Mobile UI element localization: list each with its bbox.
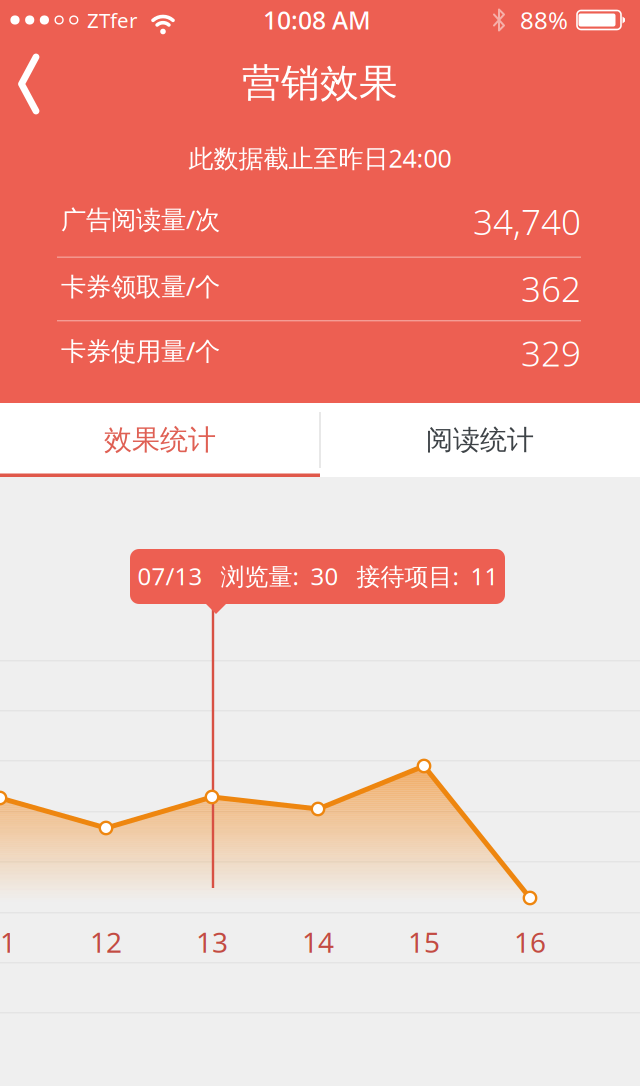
button[interactable]: 效果统计	[0, 403, 320, 477]
staticText: 11	[0, 923, 16, 961]
staticText: 营销效果	[242, 59, 398, 107]
staticText: 329	[521, 329, 581, 377]
staticText: 13	[196, 923, 228, 961]
staticText: 效果统计	[104, 422, 216, 458]
staticText: 15	[408, 923, 440, 961]
staticText: 34,740	[473, 198, 581, 245]
staticText: 88%	[520, 4, 568, 36]
staticText: ZTfer	[87, 6, 137, 34]
staticText: 卡券领取量/个	[61, 269, 220, 303]
staticText: 362	[521, 265, 581, 312]
staticText: 14	[302, 923, 334, 961]
button[interactable]	[13, 51, 43, 117]
staticText: 16	[514, 923, 546, 961]
staticText: 此数据截止至昨日24:00	[188, 141, 451, 175]
staticText: 12	[90, 923, 122, 961]
staticText: 10:08 AM	[263, 3, 371, 37]
staticText: 阅读统计	[426, 423, 534, 457]
staticText: 广告阅读量/次	[61, 202, 220, 236]
button[interactable]: 阅读统计	[320, 403, 640, 477]
staticText: 卡券使用量/个	[61, 333, 220, 368]
staticText: 07/13 浏览量: 30 接待项目: 11	[137, 560, 498, 592]
